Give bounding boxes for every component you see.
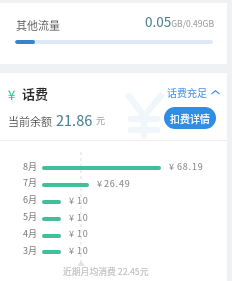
staticText: 4月 [23,227,37,240]
staticText: 话费 [22,84,49,103]
staticText: 6月 [23,193,37,206]
staticText: ¥ [69,227,74,240]
staticText: 5月 [23,210,37,223]
staticText: 10 [77,211,89,224]
staticText: 10 [77,194,89,207]
staticText: 68.19 [177,160,204,173]
staticText: 扣费详情 [170,111,210,125]
staticText: 3月 [23,244,37,257]
staticText: 7月 [23,176,37,189]
staticText: ¥ [169,160,174,173]
staticText: ¥ [69,244,74,257]
staticText: ¥ [69,211,74,224]
staticText: 0.05GB/0.49GB [145,11,214,31]
button[interactable]: 其他流量 [0,3,227,64]
staticText: 其他流量 [16,17,60,33]
staticText: 10 [77,244,89,257]
staticText: 元 [96,114,106,127]
staticText: 当前余额 [8,113,52,129]
staticText: 近期月均消费 22.45元 [63,265,149,278]
staticText: 话费充足 [167,85,207,99]
staticText: 8月 [23,160,37,173]
staticText: ¥ [8,85,16,104]
button[interactable]: 扣费详情 [164,107,216,129]
staticText: 10 [77,227,89,240]
button[interactable]: 话费充足 [167,85,220,99]
staticText: ¥ [97,177,102,190]
staticText: 26.49 [104,177,131,190]
staticText: ¥ [69,194,74,207]
staticText: 21.86 [56,109,93,130]
